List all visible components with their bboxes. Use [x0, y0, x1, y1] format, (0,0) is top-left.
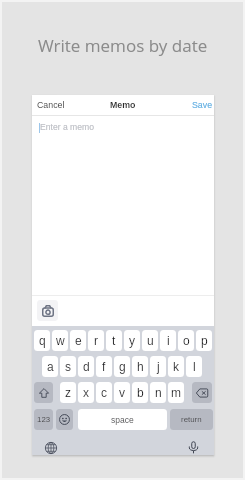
button[interactable]: w — [52, 330, 68, 351]
staticText: x — [83, 386, 89, 399]
button[interactable]: q — [34, 330, 50, 351]
button[interactable]: j — [150, 356, 166, 377]
staticText: v — [119, 386, 125, 399]
button[interactable]: space — [78, 409, 167, 430]
button[interactable]: t — [106, 330, 122, 351]
staticText: Memo — [110, 100, 136, 110]
button[interactable]: return — [170, 409, 213, 430]
button[interactable]: s — [60, 356, 76, 377]
staticText: g — [119, 360, 126, 373]
button[interactable]: n — [150, 382, 166, 403]
button[interactable]: m — [168, 382, 184, 403]
staticText: d — [83, 360, 90, 373]
button[interactable]: x — [78, 382, 94, 403]
button[interactable]: o — [178, 330, 194, 351]
staticText: f — [102, 360, 106, 373]
button[interactable]: u — [142, 330, 158, 351]
staticText: q — [39, 334, 46, 347]
staticText: n — [155, 386, 162, 399]
button[interactable]: Emoji — [56, 409, 73, 430]
button[interactable]: y — [124, 330, 140, 351]
button[interactable]: p — [196, 330, 212, 351]
staticText: s — [65, 360, 71, 373]
staticText: h — [137, 360, 144, 373]
button[interactable]: d — [78, 356, 94, 377]
button[interactable]: g — [114, 356, 130, 377]
button[interactable]: Dictate — [187, 441, 200, 454]
button[interactable]: v — [114, 382, 130, 403]
staticText: w — [56, 334, 65, 347]
staticText: p — [201, 334, 208, 347]
button[interactable]: l — [186, 356, 202, 377]
button[interactable]: c — [96, 382, 112, 403]
staticText: l — [193, 360, 196, 373]
staticText: m — [171, 386, 181, 399]
staticText: i — [167, 334, 170, 347]
staticText: c — [101, 386, 107, 399]
button[interactable]: e — [70, 330, 86, 351]
staticText: Enter a memo — [40, 122, 94, 132]
button[interactable]: h — [132, 356, 148, 377]
staticText: space — [111, 415, 134, 424]
staticText: e — [75, 334, 82, 347]
button[interactable]: Save — [192, 100, 213, 110]
staticText: b — [137, 386, 144, 399]
staticText: o — [183, 334, 190, 347]
button[interactable]: r — [88, 330, 104, 351]
button[interactable]: Shift — [34, 382, 53, 403]
staticText: y — [129, 334, 135, 347]
button[interactable]: Cancel — [37, 100, 65, 110]
staticText: 123 — [37, 415, 51, 424]
staticText: u — [147, 334, 154, 347]
staticText: return — [181, 415, 202, 424]
button[interactable]: k — [168, 356, 184, 377]
staticText: a — [47, 360, 54, 373]
button[interactable]: b — [132, 382, 148, 403]
button[interactable]: 123 — [34, 409, 53, 430]
staticText: r — [94, 334, 98, 347]
button[interactable]: i — [160, 330, 176, 351]
staticText: Save — [192, 100, 213, 110]
staticText: t — [112, 334, 116, 347]
button[interactable]: Backspace — [192, 382, 212, 403]
staticText: Write memos by date — [38, 34, 208, 57]
button[interactable]: Change keyboard — [45, 442, 57, 454]
button[interactable]: z — [60, 382, 76, 403]
staticText: j — [157, 360, 160, 373]
staticText: k — [173, 360, 179, 373]
staticText: z — [65, 386, 71, 399]
button[interactable]: a — [42, 356, 58, 377]
button[interactable]: f — [96, 356, 112, 377]
staticText: Cancel — [37, 100, 65, 110]
button[interactable]: Add photo — [37, 300, 58, 321]
